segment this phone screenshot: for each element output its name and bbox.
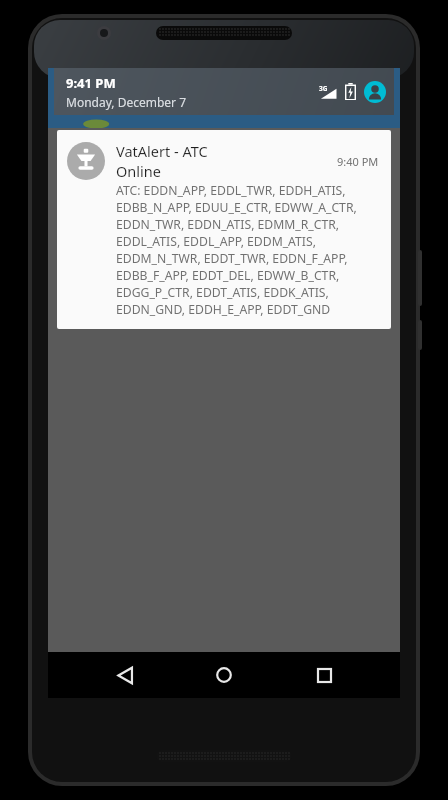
button[interactable]: Home — [201, 652, 247, 698]
button[interactable]: Back — [102, 652, 148, 698]
staticText: 3G — [319, 84, 328, 93]
staticText: EDGG_P_CTR, EDDT_ATIS, EDDK_ATIS, — [116, 284, 329, 301]
staticText: 9:41 PM — [66, 74, 116, 92]
staticText: EDDM_N_TWR, EDDT_TWR, EDDN_F_APP, — [116, 250, 348, 267]
button[interactable]: VatAlert - ATC Online — [57, 130, 391, 329]
staticText: EDBB_N_APP, EDUU_E_CTR, EDWW_A_CTR, — [116, 199, 357, 216]
staticText: VatAlert - ATC Online — [116, 141, 226, 181]
button[interactable]: STOP TRACKING — [141, 284, 274, 318]
staticText: STOP TRACKING — [157, 293, 258, 309]
staticText: EDDN_GND, EDDH_E_APP, EDDT_GND — [116, 301, 331, 318]
staticText: EDDN_TWR, EDDN_ATIS, EDMM_R_CTR, — [116, 216, 340, 233]
button[interactable]: User profile — [364, 81, 386, 103]
staticText: 9:40 PM — [337, 154, 379, 169]
staticText: EDBB_F_APP, EDDT_DEL, EDWW_B_CTR, — [116, 267, 340, 284]
button[interactable]: Recent apps — [301, 652, 347, 698]
staticText: Monday, December 7 — [66, 94, 187, 110]
staticText: EDDL_ATIS, EDDL_APP, EDDM_ATIS, — [116, 233, 316, 250]
staticText: ATC: EDDN_APP, EDDL_TWR, EDDH_ATIS, — [116, 182, 346, 199]
